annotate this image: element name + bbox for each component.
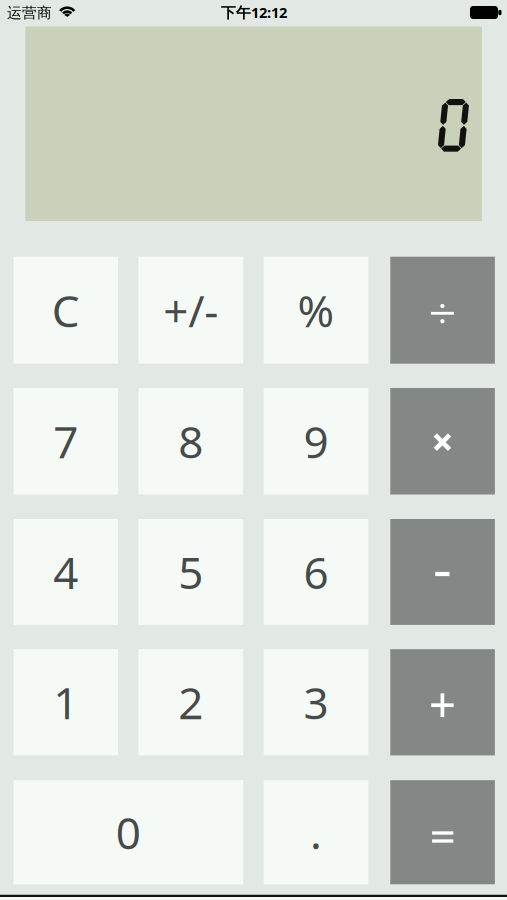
button[interactable]: C [13, 257, 118, 364]
staticText: C [52, 281, 80, 339]
button[interactable]: 2 [138, 649, 243, 755]
staticText: % [297, 281, 334, 339]
staticText: 运营商 [7, 4, 52, 22]
button[interactable]: Subtract [390, 519, 495, 625]
staticText: 9 [303, 412, 328, 470]
button[interactable]: 7 [13, 388, 118, 494]
staticText: +/- [163, 281, 218, 339]
staticText: 2 [178, 673, 203, 731]
staticText: 8 [178, 412, 203, 470]
button[interactable]: 0 [13, 780, 243, 884]
button[interactable]: 4 [13, 519, 118, 625]
button[interactable]: Add [390, 649, 495, 755]
button[interactable]: +/- [138, 257, 243, 364]
button[interactable]: Multiply [390, 388, 495, 494]
staticText: 3 [303, 673, 328, 731]
staticText: 1 [53, 673, 78, 731]
staticText: 6 [303, 543, 328, 601]
staticText: . [310, 803, 322, 861]
button[interactable]: . [264, 780, 368, 884]
button[interactable]: 5 [138, 519, 243, 625]
button[interactable]: 8 [138, 388, 243, 494]
staticText: 4 [53, 543, 78, 601]
button[interactable]: 3 [264, 649, 368, 755]
button[interactable]: 6 [264, 519, 368, 625]
button[interactable]: Divide [390, 257, 495, 364]
button[interactable]: 9 [264, 388, 368, 494]
button[interactable]: % [264, 257, 368, 364]
staticText: 7 [53, 412, 78, 470]
button[interactable]: 1 [13, 649, 118, 755]
button[interactable]: Equals [390, 780, 495, 884]
staticText: 下午12:12 [221, 2, 287, 22]
staticText: 5 [178, 543, 203, 601]
staticText: 0 [116, 803, 141, 861]
